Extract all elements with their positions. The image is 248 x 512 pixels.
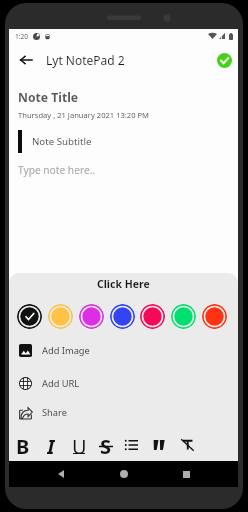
staticText: Add Image <box>42 344 90 357</box>
staticText: 1:20 <box>15 32 28 41</box>
staticText: Share <box>42 406 67 419</box>
button[interactable]: Add URL <box>9 375 238 391</box>
staticText: Add URL <box>42 377 80 390</box>
staticText: Click Here <box>97 277 150 291</box>
staticText: Note Title <box>18 89 79 106</box>
staticText: B <box>16 433 30 457</box>
button[interactable]: Black <box>17 304 42 329</box>
button[interactable]: Clear formatting <box>173 433 201 457</box>
staticText: S <box>100 433 112 457</box>
button[interactable]: Bold <box>9 433 37 457</box>
button[interactable]: Strikethrough <box>93 433 118 457</box>
button[interactable]: Magenta <box>79 304 104 329</box>
staticText: Note Subtitle <box>32 135 92 148</box>
staticText: Lyt NotePad 2 <box>46 52 125 68</box>
button[interactable]: Underline <box>65 433 93 457</box>
staticText: Thursday , 21 January 2021 13:20 PM <box>18 110 150 120</box>
button[interactable]: Pink <box>140 304 165 329</box>
button[interactable]: Home <box>113 463 135 485</box>
staticText: U <box>72 433 87 457</box>
staticText: Type note here.. <box>18 163 96 177</box>
button[interactable]: Save note <box>214 50 234 70</box>
button[interactable]: Add Image <box>9 342 238 358</box>
button[interactable]: Italic <box>37 433 65 457</box>
button[interactable]: Amber <box>48 304 73 329</box>
button[interactable]: Recent apps <box>175 463 197 485</box>
button[interactable]: Back <box>50 463 72 485</box>
button[interactable]: Blue <box>110 304 135 329</box>
button[interactable]: Red <box>202 304 227 329</box>
button[interactable]: Green <box>171 304 196 329</box>
button[interactable]: Back <box>17 51 35 69</box>
staticText: I <box>47 433 55 457</box>
button[interactable]: Bullet list <box>118 433 145 457</box>
button[interactable]: Share <box>9 404 238 420</box>
button[interactable]: Quote <box>145 433 173 457</box>
